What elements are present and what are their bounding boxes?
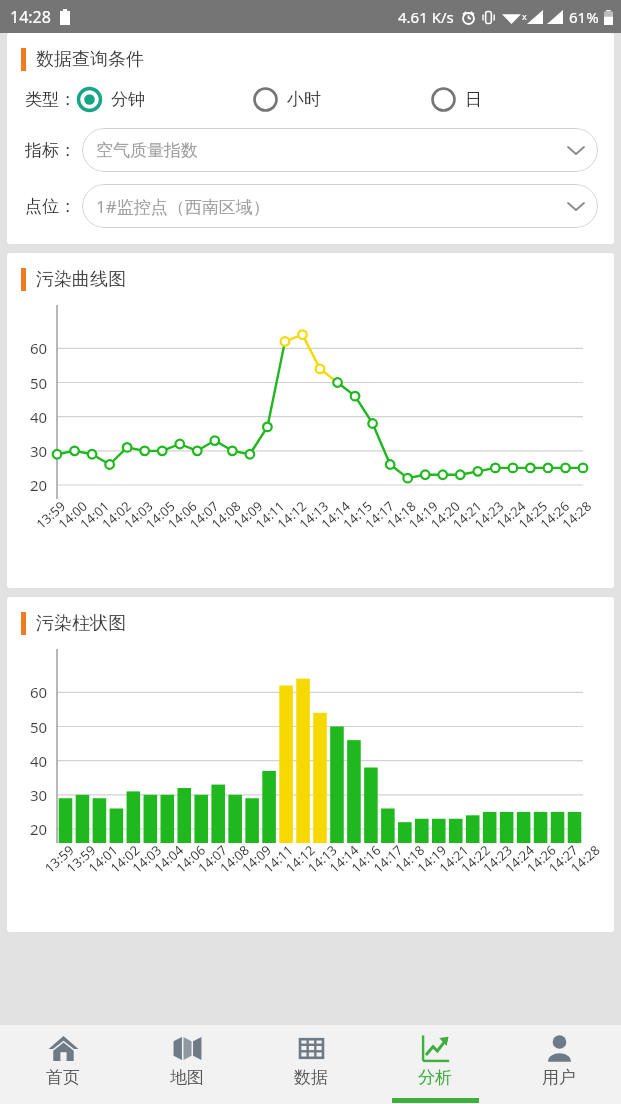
staticText: 小时 (287, 89, 321, 110)
other: 分析 (420, 1033, 451, 1064)
staticText: 分析 (418, 1067, 452, 1088)
button[interactable]: 地图 (125, 1025, 249, 1104)
staticText: 1#监控点（西南区域） (96, 195, 568, 218)
button[interactable]: 小时 (252, 86, 430, 113)
button[interactable]: 首页 (0, 1025, 125, 1104)
staticText: 污染柱状图 (36, 612, 126, 635)
button[interactable]: 日 (430, 86, 482, 113)
staticText: 污染曲线图 (36, 268, 126, 291)
staticText: 数据 (294, 1067, 328, 1088)
staticText: 分钟 (111, 89, 145, 110)
staticText: 首页 (46, 1067, 80, 1088)
staticText: 地图 (170, 1067, 204, 1088)
staticText: 类型： (25, 89, 76, 110)
staticText: 日 (465, 89, 482, 110)
staticText: 61% (569, 7, 599, 27)
button[interactable]: 分钟 (76, 86, 252, 113)
button[interactable]: 空气质量指数 (82, 128, 598, 172)
staticText: 14:28 (10, 6, 51, 28)
staticText: 4.61 K/s (398, 7, 454, 27)
staticText: 数据查询条件 (36, 48, 144, 71)
staticText: 点位： (25, 196, 76, 217)
button[interactable]: 分析 (373, 1025, 497, 1104)
button[interactable]: 1#监控点（西南区域） (82, 184, 598, 228)
button[interactable]: 用户 (497, 1025, 621, 1104)
other: 地图 (172, 1033, 203, 1064)
other: 用户 (544, 1033, 575, 1064)
button[interactable]: 数据 (249, 1025, 373, 1104)
staticText: 用户 (542, 1067, 576, 1088)
staticText: 空气质量指数 (96, 140, 568, 161)
staticText: x (522, 10, 527, 22)
other: 首页 (48, 1033, 79, 1064)
staticText: 指标： (25, 140, 76, 161)
other: 数据 (296, 1033, 327, 1064)
